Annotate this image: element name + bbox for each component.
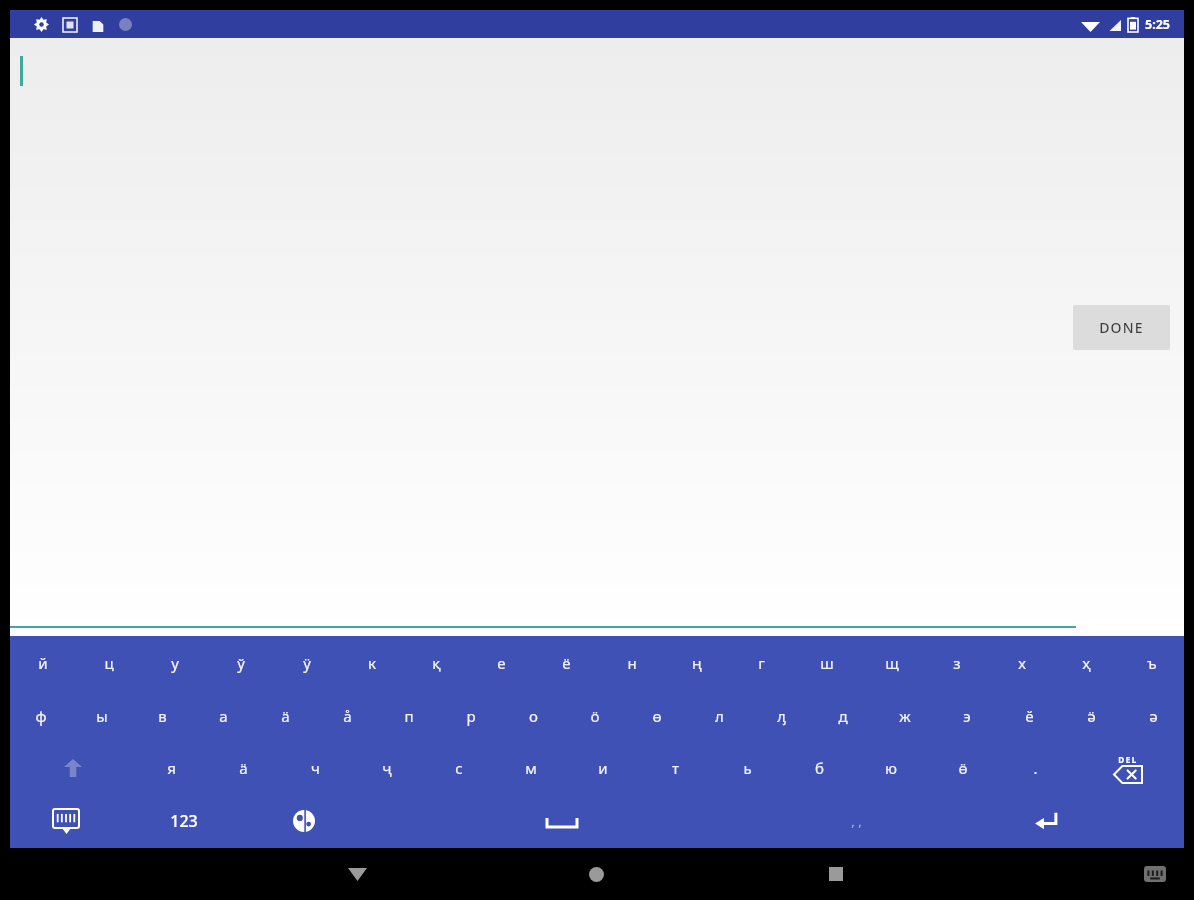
staticText: DONE bbox=[1099, 318, 1144, 337]
button[interactable]: з bbox=[924, 636, 989, 690]
button[interactable]: щ bbox=[859, 636, 924, 690]
staticText: ё bbox=[562, 653, 571, 673]
button[interactable]: н bbox=[599, 636, 664, 690]
button[interactable]: Shift bbox=[10, 742, 135, 794]
staticText: ө bbox=[652, 706, 662, 726]
staticText: ь bbox=[743, 758, 752, 778]
button[interactable]: . bbox=[999, 742, 1071, 794]
staticText: ӗ bbox=[1025, 706, 1034, 726]
button[interactable]: ӓ bbox=[207, 742, 279, 794]
staticText: я bbox=[167, 758, 176, 778]
staticText: у bbox=[171, 653, 179, 673]
button[interactable]: ё bbox=[534, 636, 599, 690]
staticText: å bbox=[343, 706, 352, 726]
button[interactable]: ю bbox=[855, 742, 927, 794]
button[interactable]: ө bbox=[626, 690, 688, 742]
button[interactable] bbox=[362, 794, 762, 848]
button[interactable]: Delete bbox=[1071, 742, 1184, 794]
button[interactable]: ъ bbox=[1119, 636, 1184, 690]
staticText: б bbox=[815, 758, 824, 778]
staticText: ш bbox=[820, 653, 834, 673]
staticText: ӓ bbox=[281, 706, 290, 726]
button[interactable]: г bbox=[729, 636, 794, 690]
staticText: 5:25 bbox=[1145, 16, 1170, 33]
button[interactable]: й bbox=[10, 636, 76, 690]
button[interactable]: л bbox=[688, 690, 750, 742]
button[interactable]: Home bbox=[477, 848, 716, 900]
button[interactable]: ӛ bbox=[1060, 690, 1122, 742]
staticText: и bbox=[598, 758, 608, 778]
staticText: г bbox=[758, 653, 765, 673]
button[interactable]: ч bbox=[279, 742, 351, 794]
button[interactable]: ӧ bbox=[564, 690, 626, 742]
staticText: ю bbox=[885, 758, 897, 778]
button[interactable]: и bbox=[567, 742, 639, 794]
staticText: ӫ bbox=[958, 758, 968, 778]
staticText: т bbox=[672, 758, 679, 778]
button[interactable]: ӗ bbox=[998, 690, 1060, 742]
staticText: п bbox=[404, 706, 414, 726]
button[interactable]: ў bbox=[208, 636, 274, 690]
button[interactable]: п bbox=[378, 690, 440, 742]
button[interactable]: у bbox=[142, 636, 208, 690]
button[interactable]: Keyboard bbox=[1144, 866, 1166, 882]
staticText: з bbox=[953, 653, 961, 673]
button[interactable]: ж bbox=[874, 690, 936, 742]
button[interactable]: с bbox=[423, 742, 495, 794]
button[interactable]: х bbox=[989, 636, 1054, 690]
staticText: ч bbox=[311, 758, 320, 778]
button[interactable]: ӓ bbox=[254, 690, 316, 742]
button[interactable]: Change language bbox=[246, 794, 362, 848]
button[interactable]: Recents bbox=[716, 848, 955, 900]
button[interactable]: ҷ bbox=[351, 742, 423, 794]
button[interactable]: в bbox=[132, 690, 193, 742]
button[interactable]: ь bbox=[711, 742, 783, 794]
button[interactable]: д bbox=[812, 690, 874, 742]
button[interactable]: к bbox=[339, 636, 404, 690]
button[interactable]: т bbox=[639, 742, 711, 794]
button[interactable]: а bbox=[193, 690, 254, 742]
button[interactable]: е bbox=[469, 636, 534, 690]
staticText: д bbox=[838, 706, 848, 726]
staticText: ф bbox=[35, 706, 47, 726]
staticText: , , bbox=[851, 812, 862, 830]
button[interactable]: о bbox=[502, 690, 564, 742]
button[interactable]: б bbox=[783, 742, 855, 794]
staticText: 123 bbox=[170, 810, 198, 832]
button[interactable]: ӫ bbox=[927, 742, 999, 794]
button[interactable]: Back bbox=[238, 848, 477, 900]
button[interactable]: я bbox=[135, 742, 207, 794]
staticText: ӛ bbox=[1087, 706, 1096, 726]
button[interactable]: ӱ bbox=[274, 636, 339, 690]
button[interactable]: р bbox=[440, 690, 502, 742]
button[interactable]: ҳ bbox=[1054, 636, 1119, 690]
button[interactable]: ц bbox=[76, 636, 142, 690]
button[interactable]: Enter bbox=[951, 794, 1140, 848]
staticText: м bbox=[525, 758, 537, 778]
staticText: ә bbox=[1149, 706, 1158, 726]
staticText: х bbox=[1018, 653, 1026, 673]
button[interactable]: å bbox=[316, 690, 378, 742]
button[interactable]: ә bbox=[1122, 690, 1184, 742]
staticText: а bbox=[219, 706, 228, 726]
staticText: й bbox=[38, 653, 48, 673]
staticText: ԓ bbox=[777, 706, 786, 726]
button[interactable]: қ bbox=[404, 636, 469, 690]
button[interactable]: ш bbox=[794, 636, 859, 690]
button[interactable]: DONE bbox=[1073, 305, 1170, 350]
button[interactable]: 123 bbox=[122, 794, 246, 848]
button[interactable]: э bbox=[936, 690, 998, 742]
staticText: . bbox=[1033, 758, 1038, 778]
staticText: ҳ bbox=[1082, 653, 1091, 673]
staticText: л bbox=[715, 706, 724, 726]
button[interactable]: Hide keyboard bbox=[10, 794, 122, 848]
button[interactable]: ԓ bbox=[750, 690, 812, 742]
staticText: ъ bbox=[1147, 653, 1157, 673]
button[interactable]: м bbox=[495, 742, 567, 794]
staticText: ҷ bbox=[382, 758, 392, 778]
button[interactable]: ф bbox=[10, 690, 71, 742]
staticText: р bbox=[466, 706, 476, 726]
button[interactable]: ы bbox=[71, 690, 132, 742]
button[interactable]: ң bbox=[664, 636, 729, 690]
